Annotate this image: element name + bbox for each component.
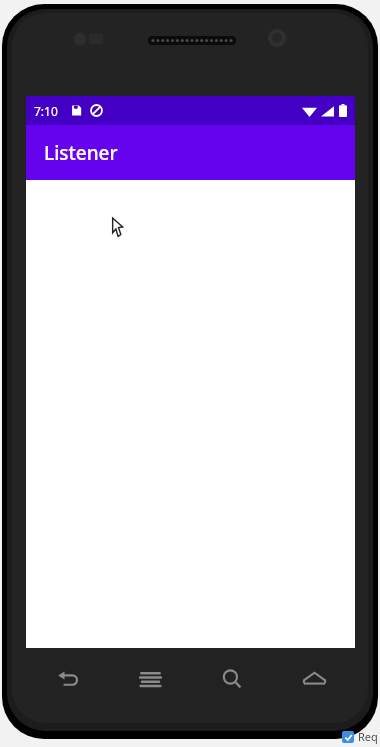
button[interactable]: Back	[26, 648, 109, 710]
button[interactable]: Listener	[26, 125, 355, 180]
button[interactable]: Menu	[109, 648, 191, 710]
staticText: 7:10	[34, 103, 58, 119]
staticText: Req	[358, 729, 378, 744]
staticText: Listener	[44, 140, 118, 166]
button[interactable]: Req	[342, 729, 378, 744]
button[interactable]: Search	[191, 648, 273, 710]
button[interactable]: Home	[273, 648, 355, 710]
